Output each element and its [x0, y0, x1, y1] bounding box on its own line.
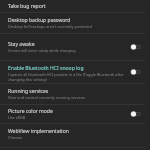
- staticText: Enable Bluetooth HCI snoop log: [8, 65, 84, 72]
- staticText: Capture all bluetooth HCI packets in a f…: [8, 72, 128, 82]
- button[interactable]: Toggle setting: [130, 66, 143, 78]
- staticText: Stay awake: [8, 41, 35, 48]
- staticText: Screen will never sleep while charging: [8, 48, 76, 53]
- staticText: WebView implementation: [8, 128, 69, 135]
- staticText: Running services: [8, 88, 49, 95]
- button[interactable]: Enable Bluetooth HCI snoop log: [0, 61, 150, 83]
- button[interactable]: Picture color mode: [0, 105, 150, 123]
- button[interactable]: Toggle setting: [130, 108, 143, 120]
- button[interactable]: Take bug report: [0, 0, 150, 12]
- staticText: Desktop full backups aren't currently pr…: [8, 24, 92, 29]
- staticText: Picture color mode: [8, 108, 53, 115]
- staticText: View and control currently running servi…: [8, 95, 86, 100]
- staticText: Take bug report: [8, 3, 46, 10]
- button[interactable]: Stay awake: [0, 34, 150, 60]
- button[interactable]: Toggle setting: [130, 41, 143, 53]
- staticText: Chrome: [8, 135, 23, 140]
- button[interactable]: WebView implementation: [0, 124, 150, 147]
- staticText: Use sRGB: [8, 115, 26, 120]
- button[interactable]: Running services: [0, 84, 150, 104]
- staticText: Desktop backup password: [8, 17, 71, 24]
- button[interactable]: Desktop backup password: [0, 13, 150, 33]
